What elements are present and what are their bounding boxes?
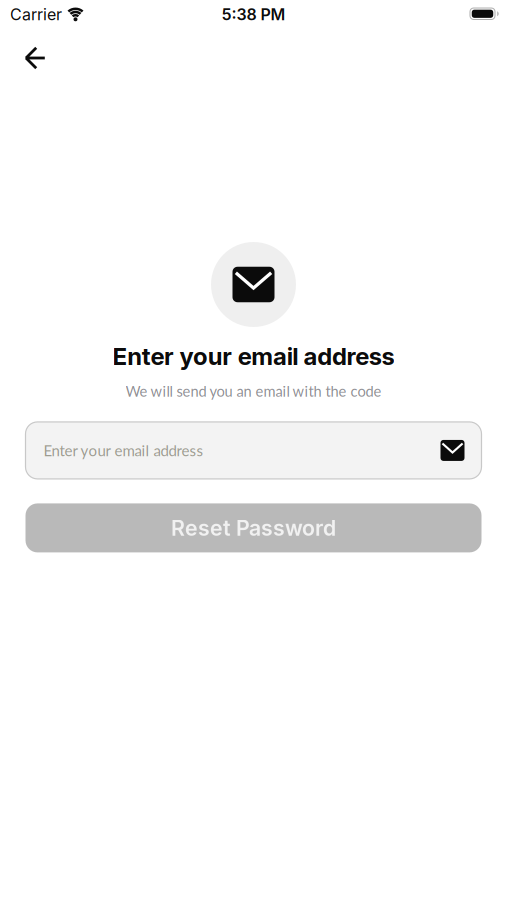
- button[interactable]: Back: [18, 40, 52, 76]
- staticText: Reset Password: [171, 515, 336, 540]
- textField[interactable]: Enter your email address: [43, 441, 242, 459]
- button[interactable]: Reset Password: [25, 503, 481, 552]
- staticText: We will send you an email with the code: [125, 382, 381, 400]
- staticText: Carrier: [10, 5, 62, 24]
- staticText: Enter your email address: [43, 441, 203, 459]
- staticText: 5:38 PM: [221, 5, 285, 24]
- staticText: Enter your email address: [112, 342, 394, 370]
